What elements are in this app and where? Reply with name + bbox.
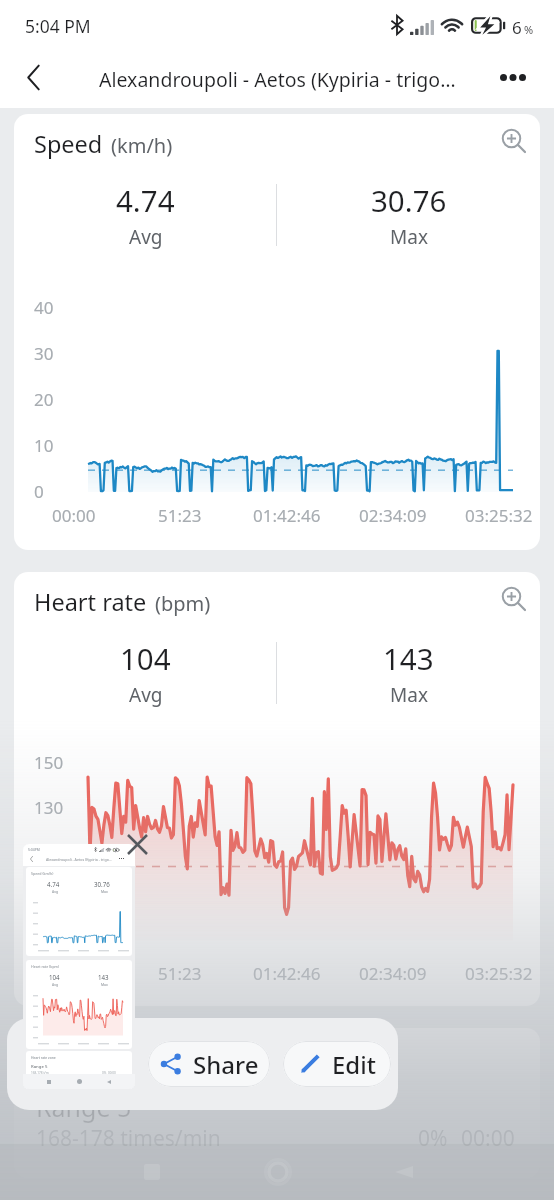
staticText: Heart rate zone bbox=[31, 1055, 56, 1060]
staticText: Alexandroupoli - Aetos (Kypiria - trigo… bbox=[99, 66, 456, 93]
staticText: 4.74 bbox=[116, 180, 175, 220]
staticText: Range 5 bbox=[36, 1090, 132, 1124]
staticText: 168-178 t/m bbox=[31, 1071, 49, 1075]
staticText: 40 bbox=[34, 296, 54, 319]
staticText: 5:04 PM bbox=[25, 14, 91, 38]
button[interactable]: Edit bbox=[283, 1041, 391, 1087]
staticText: 01:42:46 bbox=[253, 962, 321, 985]
staticText: Alexandroupoli - Aetos (Kypiria - trigo… bbox=[46, 857, 112, 862]
staticText: Heart rate zone bbox=[36, 1054, 168, 1079]
staticText: (km/h) bbox=[111, 132, 173, 159]
staticText: Avg bbox=[129, 682, 163, 708]
staticText: 90 bbox=[34, 886, 54, 909]
staticText: 10 bbox=[34, 434, 54, 457]
staticText: 104 bbox=[49, 973, 60, 981]
staticText: 0 bbox=[34, 480, 44, 503]
staticText: Max bbox=[101, 889, 108, 894]
staticText: Avg bbox=[52, 982, 58, 987]
button[interactable]: Close preview bbox=[125, 832, 150, 857]
staticText: Share bbox=[193, 1048, 259, 1081]
staticText: Heart rate (bpm) bbox=[31, 964, 60, 969]
staticText: Speed bbox=[34, 128, 103, 160]
staticText: 0% 00:00 bbox=[102, 1071, 116, 1075]
staticText: Range 5 bbox=[31, 1063, 48, 1069]
staticText: 143 bbox=[98, 973, 109, 981]
staticText: Avg bbox=[129, 224, 163, 250]
staticText: 02:34:09 bbox=[359, 962, 427, 985]
button[interactable]: More options bbox=[490, 54, 536, 100]
staticText: 00:00 bbox=[52, 504, 96, 527]
staticText: 30.76 bbox=[371, 180, 447, 220]
staticText: Max bbox=[101, 982, 108, 987]
staticText: 6 bbox=[512, 16, 522, 39]
staticText: Heart rate bbox=[34, 586, 147, 618]
button[interactable]: Zoom in bbox=[490, 575, 536, 621]
staticText: % bbox=[524, 22, 534, 37]
staticText: 4.74 bbox=[47, 880, 60, 888]
staticText: Max bbox=[390, 224, 428, 250]
staticText: 143 bbox=[383, 638, 434, 678]
staticText: 03:25:32 bbox=[465, 962, 533, 985]
staticText: Max bbox=[390, 682, 428, 708]
staticText: 0% bbox=[418, 1124, 448, 1153]
staticText: 30.76 bbox=[94, 880, 110, 888]
staticText: 168-178 times/min bbox=[36, 1124, 221, 1153]
staticText: 110 bbox=[34, 841, 64, 864]
staticText: 150 bbox=[34, 751, 64, 774]
staticText: 03:25:32 bbox=[465, 504, 533, 527]
button[interactable]: Back bbox=[10, 54, 56, 100]
staticText: Edit bbox=[332, 1048, 376, 1081]
staticText: 01:42:46 bbox=[253, 504, 321, 527]
staticText: 30 bbox=[34, 342, 54, 365]
staticText: 5:04PM bbox=[28, 847, 40, 852]
staticText: 70 bbox=[34, 931, 54, 954]
staticText: 02:34:09 bbox=[359, 504, 427, 527]
staticText: (bpm) bbox=[155, 590, 211, 617]
staticText: 104 bbox=[120, 638, 171, 678]
staticText: 51:23 bbox=[158, 504, 202, 527]
staticText: Speed (km/h) bbox=[31, 871, 54, 876]
button[interactable]: Zoom in bbox=[490, 117, 536, 163]
button[interactable]: Share bbox=[148, 1041, 270, 1087]
staticText: 130 bbox=[34, 796, 64, 819]
staticText: 00:00 bbox=[52, 962, 96, 985]
staticText: Avg bbox=[52, 889, 58, 894]
staticText: 20 bbox=[34, 388, 54, 411]
staticText: 51:23 bbox=[158, 962, 202, 985]
staticText: 00:00 bbox=[461, 1124, 515, 1153]
